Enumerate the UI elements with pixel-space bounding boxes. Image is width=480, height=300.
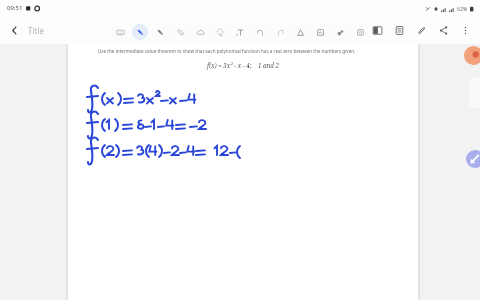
staticText: 09:51 [7, 4, 23, 12]
button[interactable]: Color picker [464, 46, 480, 65]
button[interactable]: Undo [252, 24, 268, 40]
button[interactable]: Single page view [388, 19, 410, 41]
staticText: Title [28, 25, 44, 36]
button[interactable]: Marker [152, 24, 168, 40]
button[interactable]: Pen [132, 24, 148, 40]
button[interactable]: Edit [466, 150, 480, 168]
button[interactable]: Lasso select [212, 24, 228, 40]
staticText: 62% [457, 5, 468, 12]
button[interactable]: Shapes [292, 24, 308, 40]
button[interactable]: Insert image [312, 24, 328, 40]
button[interactable]: Text [232, 24, 248, 40]
button[interactable]: Attach [410, 19, 432, 41]
button[interactable]: Page lock [352, 24, 368, 40]
button[interactable]: Sticker [332, 24, 348, 40]
button[interactable]: Back [0, 16, 28, 44]
staticText: Use the intermediate value theorem to sh… [98, 48, 356, 54]
button[interactable]: Redo [272, 24, 288, 40]
button[interactable]: Keyboard [112, 24, 128, 40]
button[interactable]: Share [432, 19, 454, 41]
button[interactable]: Eraser [192, 24, 208, 40]
button[interactable]: More options [454, 19, 476, 41]
button[interactable]: Highlighter [172, 24, 188, 40]
button[interactable]: Dual page view [366, 19, 388, 41]
staticText: f(x) = 3x² − x − 4; 1 and 2 [207, 61, 279, 69]
